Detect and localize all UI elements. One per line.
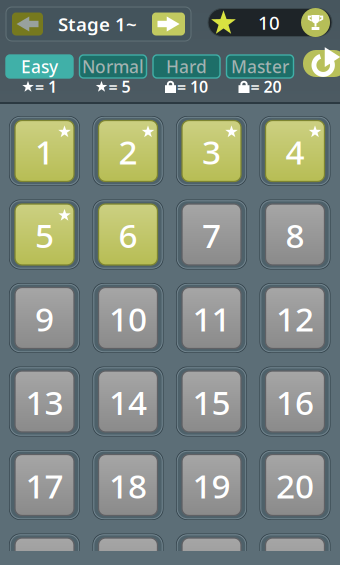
staticText: 7 [202,213,221,257]
staticText: 8 [285,213,304,257]
staticText: 11 [192,296,230,341]
button[interactable]: 4 [259,116,330,186]
button[interactable]: 13 [9,366,80,436]
button[interactable]: 19 [176,450,247,520]
staticText: 3 [202,129,221,174]
button[interactable]: Trophies [301,8,330,37]
button[interactable]: 2 [92,116,163,186]
button[interactable]: 23 [176,533,247,565]
staticText: 20 [276,463,314,508]
button[interactable]: 16 [259,366,330,436]
staticText: 12 [276,296,314,341]
button[interactable]: 18 [92,450,163,520]
staticText: = 5 [108,76,130,97]
button[interactable]: Hard [153,54,220,94]
button[interactable]: 3 [176,116,247,186]
staticText: = 10 [177,76,208,97]
button[interactable]: 20 [259,450,330,520]
staticText: = 1 [35,76,57,97]
staticText: Stage 1~ [58,12,137,36]
staticText: 13 [25,380,63,424]
button[interactable]: 10 [92,283,163,353]
staticText: 18 [109,463,147,508]
staticText: 24 [276,547,314,565]
staticText: = 20 [250,76,281,97]
button[interactable]: Reset [303,50,340,77]
button[interactable]: Easy [6,54,73,94]
button[interactable]: 9 [9,283,80,353]
staticText: 2 [118,129,137,174]
staticText: 10 [258,10,280,35]
staticText: 5 [35,213,54,257]
button[interactable]: 7 [176,199,247,269]
staticText: 15 [192,380,230,424]
button[interactable]: Master [226,54,293,94]
button[interactable]: Next stage [152,12,185,35]
button[interactable]: 22 [92,533,163,565]
staticText: 22 [109,547,147,565]
button[interactable]: Previous stage [12,12,43,35]
button[interactable]: 15 [176,366,247,436]
button[interactable]: 6 [92,199,163,269]
staticText: 9 [35,296,54,341]
button[interactable]: 12 [259,283,330,353]
staticText: 1 [35,129,54,174]
staticText: 4 [285,129,304,174]
button[interactable]: 14 [92,366,163,436]
staticText: Hard [166,55,207,78]
button[interactable]: 24 [259,533,330,565]
button[interactable]: Normal [79,54,146,94]
button[interactable]: 17 [9,450,80,520]
staticText: 14 [109,380,147,424]
button[interactable]: 8 [259,199,330,269]
staticText: Master [231,55,289,78]
staticText: Normal [82,55,144,78]
staticText: 21 [25,547,63,565]
staticText: Easy [21,55,58,78]
staticText: 19 [192,463,230,508]
button[interactable]: 21 [9,533,80,565]
staticText: 17 [25,463,63,508]
button[interactable]: 11 [176,283,247,353]
staticText: 10 [109,296,147,341]
staticText: 16 [276,380,314,424]
staticText: 23 [192,547,230,565]
staticText: 6 [118,213,137,257]
button[interactable]: 5 [9,199,80,269]
button[interactable]: 1 [9,116,80,186]
